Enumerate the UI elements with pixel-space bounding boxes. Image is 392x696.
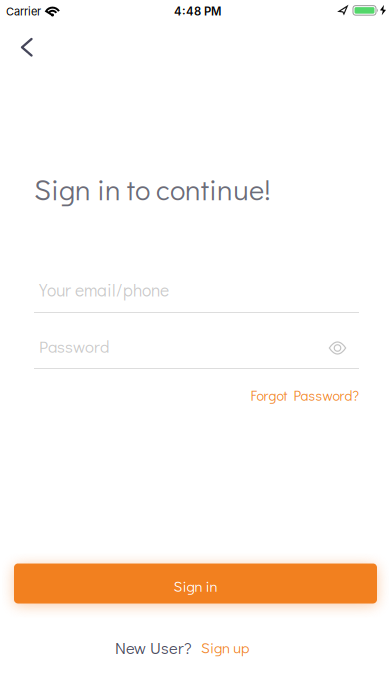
staticText: Sign in <box>173 576 217 596</box>
button[interactable]: Forgot Password? <box>159 386 359 405</box>
staticText: Sign in to continue! <box>34 170 271 208</box>
staticText: 4:48 PM <box>174 5 221 18</box>
button[interactable]: Password <box>34 326 359 370</box>
staticText: Your email/phone <box>39 278 169 301</box>
staticText: New User? <box>115 637 192 658</box>
button[interactable]: Sign up <box>201 638 249 657</box>
button[interactable]: Sign in <box>14 563 377 603</box>
button[interactable]: Show password <box>325 338 349 358</box>
staticText: Carrier <box>6 5 41 18</box>
staticText: Forgot Password? <box>250 386 359 405</box>
staticText: Password <box>39 335 109 357</box>
button[interactable]: Your email/phone <box>34 270 359 314</box>
button[interactable]: Back <box>6 27 46 67</box>
staticText: Sign up <box>201 638 249 657</box>
